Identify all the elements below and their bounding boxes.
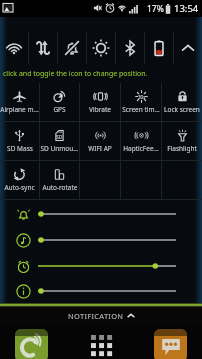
staticText: Airplane m... — [0, 105, 39, 114]
button[interactable]: SD Mass — [0, 122, 39, 160]
button[interactable]: Auto-sync — [0, 161, 39, 199]
button[interactable]: Bluetooth — [116, 32, 144, 64]
staticText: HapticFee... — [123, 144, 159, 153]
staticText: 17% — [147, 3, 164, 15]
button[interactable]: Auto-rotate — [40, 161, 79, 199]
button[interactable]: Messages — [154, 329, 187, 359]
button[interactable] — [0, 227, 202, 253]
button[interactable]: Wi-Fi — [0, 32, 28, 64]
button[interactable]: Vibrate — [80, 83, 120, 121]
button[interactable]: SD — [40, 122, 79, 160]
staticText: Lock screen — [164, 105, 200, 114]
button[interactable]: Sound off — [58, 32, 86, 64]
button[interactable]: Phone — [15, 329, 48, 359]
button[interactable]: Brightness — [87, 32, 115, 64]
button[interactable]: Flashlight — [162, 122, 202, 160]
button[interactable]: WIFI AP — [80, 122, 120, 160]
staticText: SD Mass — [7, 144, 33, 153]
staticText: click and toggle the icon to change posi… — [3, 69, 148, 79]
staticText: SD — [56, 134, 63, 141]
staticText: 30s — [138, 94, 146, 100]
staticText: Flashlight — [167, 144, 197, 153]
staticText: NOTIFICATION — [68, 311, 124, 321]
button[interactable]: Airplane m... — [0, 83, 39, 121]
button[interactable]: Sync — [29, 32, 57, 64]
staticText: GPS — [53, 105, 66, 114]
staticText: SD Unmou... — [40, 144, 79, 153]
staticText: Screen tim... — [122, 105, 160, 114]
button[interactable]: GPS — [40, 83, 79, 121]
staticText: WIFI AP — [88, 144, 112, 153]
staticText: Vibrate — [89, 105, 111, 114]
button[interactable]: Battery — [145, 32, 173, 64]
staticText: 17 — [155, 44, 163, 53]
staticText: 13:54 — [174, 2, 199, 15]
button[interactable] — [0, 279, 202, 303]
button[interactable]: 30s — [121, 83, 161, 121]
staticText: Auto-rotate — [42, 183, 78, 192]
button[interactable]: NOTIFICATION — [0, 307, 202, 324]
button[interactable]: Collapse — [174, 32, 202, 64]
button[interactable] — [0, 201, 202, 227]
button[interactable]: Apps — [85, 329, 117, 359]
button[interactable]: Lock screen — [162, 83, 202, 121]
button[interactable]: HapticFee... — [121, 122, 161, 160]
staticText: Auto-sync — [4, 183, 35, 192]
button[interactable] — [0, 253, 202, 279]
